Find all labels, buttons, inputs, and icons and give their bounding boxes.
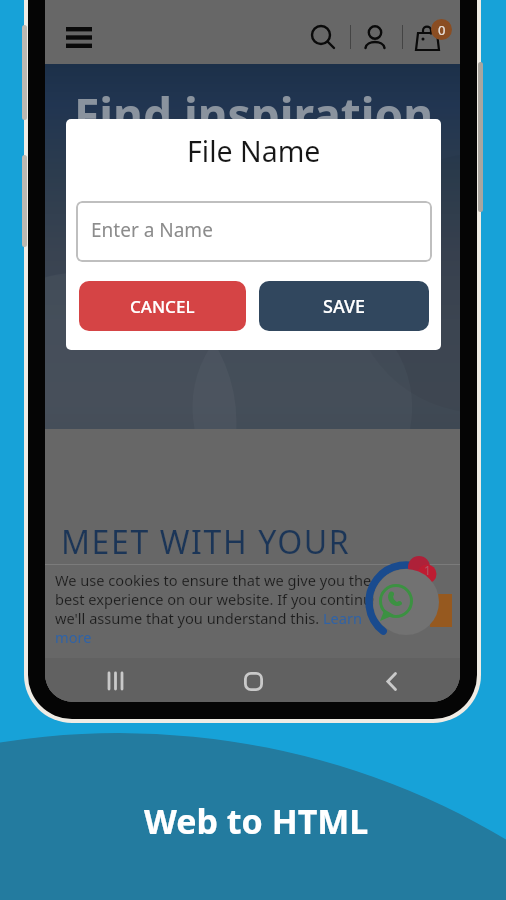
button[interactable]: Cart <box>405 15 449 59</box>
staticText: Enter a Name <box>91 217 213 243</box>
staticText: File Name <box>187 132 321 171</box>
staticText: MEET WITH YOUR <box>61 520 351 564</box>
button[interactable]: Recents <box>93 659 137 702</box>
staticText: Find inspiration <box>74 83 434 146</box>
button[interactable]: WhatsApp chat <box>361 557 451 647</box>
button[interactable]: Back <box>369 659 413 702</box>
staticText: Web to HTML <box>144 798 369 844</box>
staticText: 0 <box>438 21 446 39</box>
button[interactable]: Search <box>301 15 345 59</box>
button[interactable]: Account <box>353 15 397 59</box>
button[interactable]: Enter a Name <box>76 201 432 262</box>
button[interactable]: SAVE <box>259 281 429 331</box>
staticText: CANCEL <box>130 295 195 318</box>
staticText: 1 <box>424 562 431 578</box>
staticText: We use cookies to ensure that we give yo… <box>55 570 385 647</box>
staticText: SAVE <box>323 294 366 319</box>
button[interactable]: CANCEL <box>79 281 246 331</box>
button[interactable]: Menu <box>57 18 101 57</box>
button[interactable]: Home <box>231 659 275 702</box>
